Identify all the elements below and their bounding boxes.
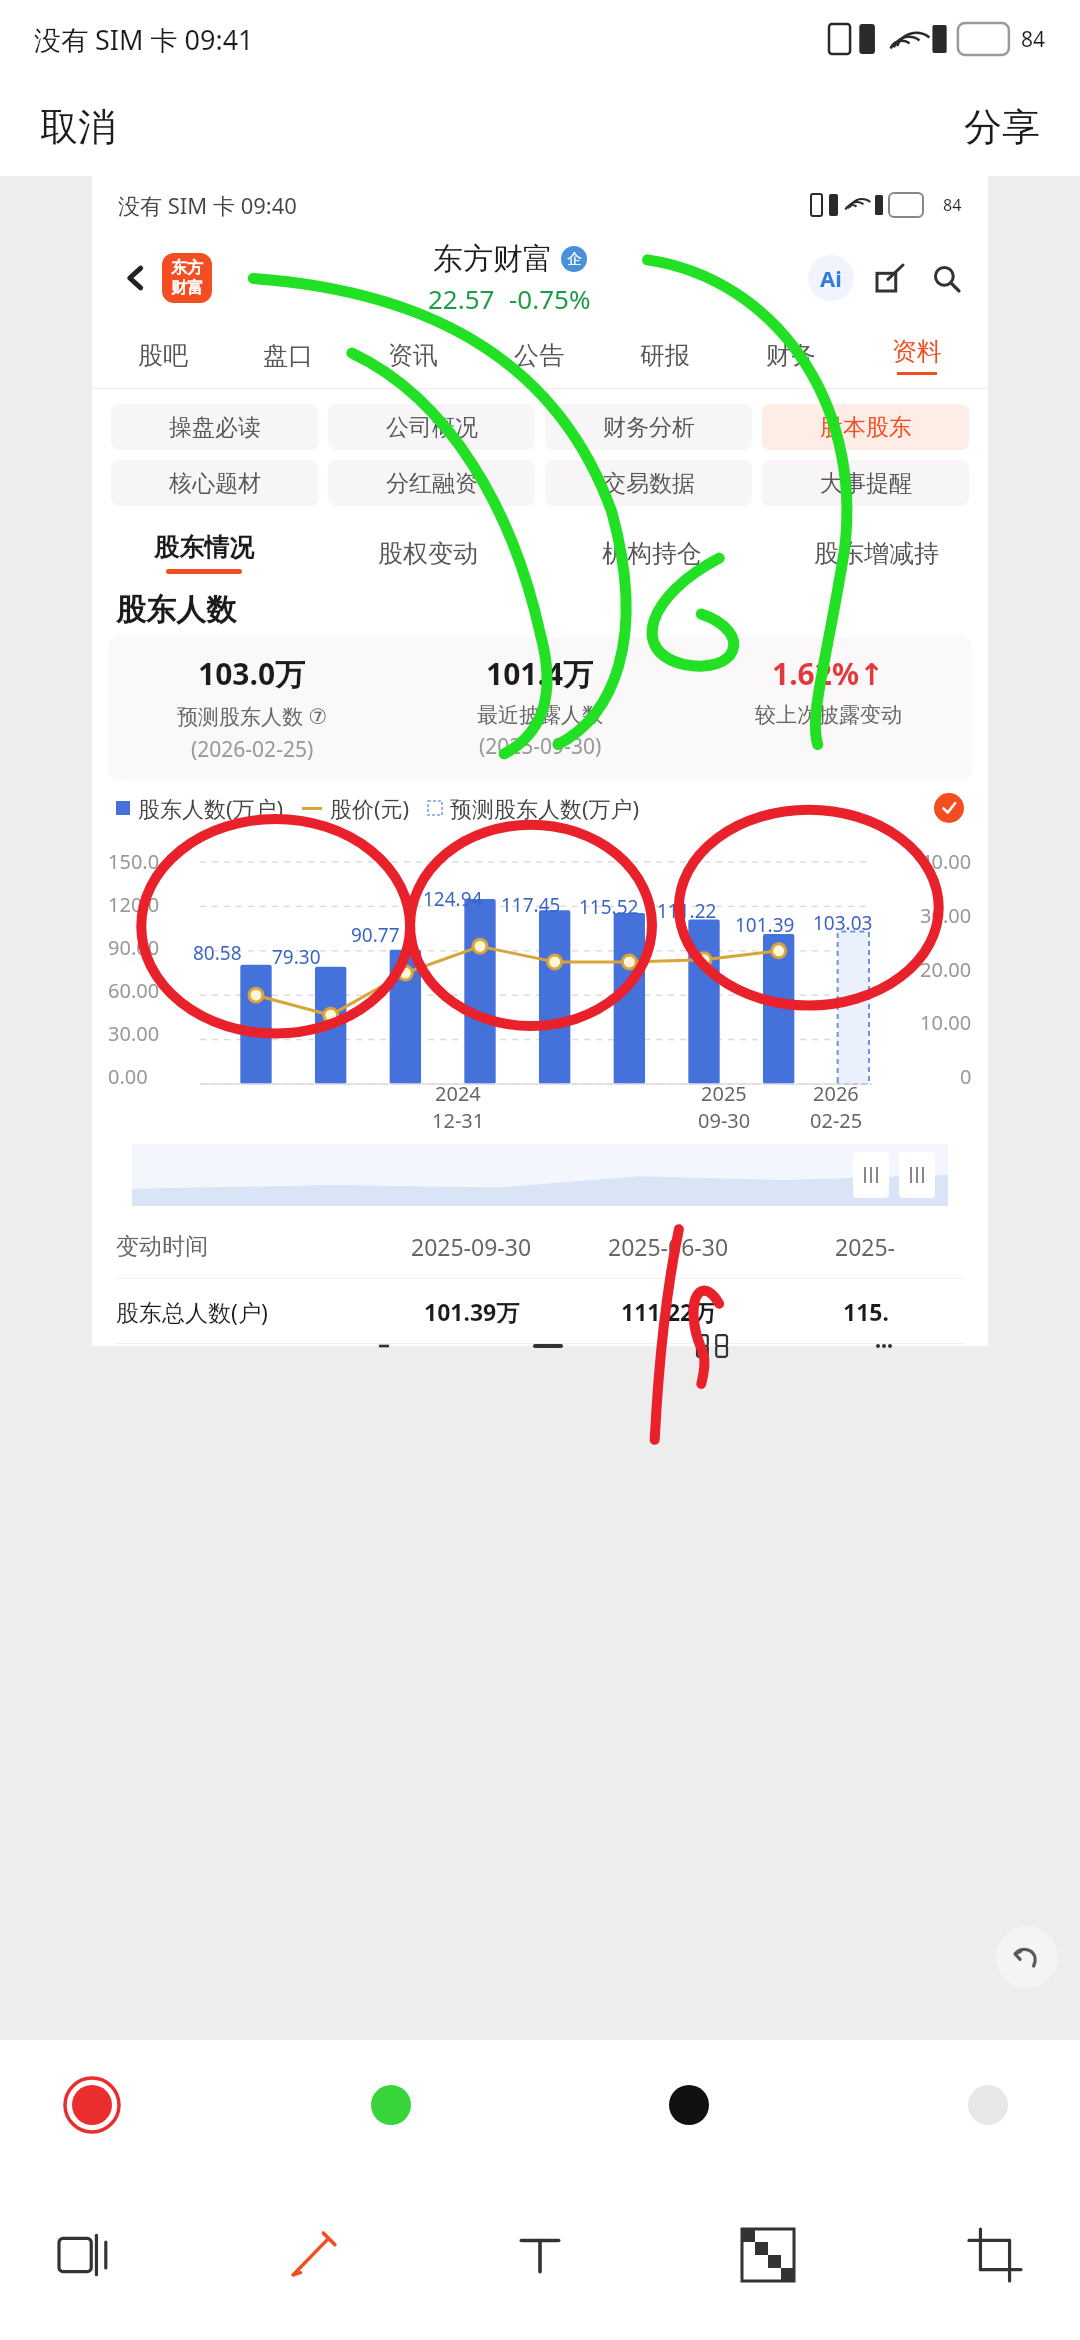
staticText: 分享 xyxy=(964,103,1040,151)
button[interactable]: Range handle xyxy=(899,1152,935,1198)
button[interactable]: 大事提醒 xyxy=(762,460,969,506)
button[interactable]: 公告 xyxy=(476,322,602,388)
button[interactable]: Mosaic xyxy=(723,2210,813,2300)
staticText: 股本股东 xyxy=(820,413,912,442)
staticText: 115. xyxy=(843,1296,889,1327)
button[interactable]: 盘口 xyxy=(225,322,350,388)
button[interactable]: 核心题材 xyxy=(111,460,318,506)
staticText: 60.00 xyxy=(108,977,160,1004)
staticText: 103.0万 xyxy=(198,653,306,694)
staticText: 111.22万 xyxy=(621,1296,717,1327)
button[interactable]: 取消 xyxy=(34,97,122,157)
staticText: 111.22 xyxy=(657,898,717,924)
button[interactable]: 股本股东 xyxy=(762,404,969,450)
staticText: 取消 xyxy=(40,103,116,151)
button[interactable]: Search xyxy=(926,258,966,298)
staticText: (2025-09-30) xyxy=(479,732,602,761)
staticText: 股东情况 xyxy=(154,532,254,563)
button[interactable]: Crop xyxy=(950,2210,1040,2300)
staticText: 30.00 xyxy=(108,1020,160,1047)
staticText: 2024 xyxy=(435,1080,481,1107)
staticText: (2026-02-25) xyxy=(191,735,314,764)
button[interactable]: 股东情况 xyxy=(92,521,316,585)
staticText: 财富 xyxy=(171,278,203,298)
button[interactable]: 操盘必读 xyxy=(111,404,318,450)
staticText: 02-25 xyxy=(810,1107,863,1134)
button[interactable]: 资讯 xyxy=(350,322,476,388)
staticText: 101.39 xyxy=(735,912,795,938)
staticText: 10.00 xyxy=(920,1009,972,1036)
staticText: 2025 xyxy=(701,1080,747,1107)
staticText: 20.00 xyxy=(920,956,972,983)
button[interactable]: 东方 xyxy=(162,253,212,303)
staticText: 没有 SIM 卡 09:41 xyxy=(34,21,254,58)
staticText: 交易数据 xyxy=(603,469,695,498)
staticText: 79.30 xyxy=(272,944,321,970)
button[interactable]: Text xyxy=(495,2210,585,2300)
staticText: 80.58 xyxy=(193,940,242,966)
staticText: 30.00 xyxy=(920,902,972,929)
button[interactable]: Undo xyxy=(996,1926,1058,1988)
staticText: Ai xyxy=(820,263,842,293)
staticText: 115. xyxy=(843,1344,889,1346)
button[interactable]: AI xyxy=(808,255,854,301)
button[interactable]: 股权变动 xyxy=(316,521,540,585)
button[interactable]: Range handle xyxy=(853,1152,889,1198)
staticText: 115.52 xyxy=(579,894,639,920)
staticText: 09-30 xyxy=(698,1107,751,1134)
staticText: 2025- xyxy=(835,1231,896,1262)
staticText: 2026 xyxy=(813,1080,859,1107)
button[interactable]: 机构持仓 xyxy=(540,521,764,585)
staticText: 120.0 xyxy=(108,891,160,918)
button[interactable] xyxy=(934,793,964,823)
staticText: 12-31 xyxy=(432,1107,485,1134)
staticText: 核心题材 xyxy=(169,469,261,498)
staticText: 预测股东人数(万户) xyxy=(450,793,640,823)
staticText: 资料 xyxy=(892,336,942,367)
button[interactable]: 分红融资 xyxy=(328,460,535,506)
button[interactable]: Colour xyxy=(657,2073,721,2137)
button[interactable]: 交易数据 xyxy=(545,460,752,506)
staticText: 90.77 xyxy=(351,922,400,948)
staticText: 101.39万 xyxy=(424,1296,520,1327)
staticText: 2025-09-30 xyxy=(411,1231,532,1262)
staticText: 资讯 xyxy=(388,340,438,371)
button[interactable]: Pen xyxy=(268,2210,358,2300)
staticText: 2025-06-30 xyxy=(608,1231,729,1262)
staticText: 股权变动 xyxy=(378,538,478,569)
button[interactable]: 财务 xyxy=(728,322,854,388)
staticText: 财务 xyxy=(766,340,816,371)
button[interactable]: 股吧 xyxy=(100,322,225,388)
button[interactable]: 资料 xyxy=(854,322,980,388)
staticText: 股东总人数(户) xyxy=(116,1296,268,1327)
staticText: 111.22万 xyxy=(621,1344,717,1346)
staticText: 1.62%↑ xyxy=(772,653,885,694)
staticText: 分红融资 xyxy=(386,469,478,498)
button[interactable]: 研报 xyxy=(602,322,728,388)
button[interactable]: Layers xyxy=(40,2210,130,2300)
staticText: 最近披露人数 xyxy=(477,702,603,728)
staticText: 变动时间 xyxy=(116,1232,208,1261)
staticText: 没有 SIM 卡 09:40 xyxy=(118,190,297,220)
button[interactable]: 公司概况 xyxy=(328,404,535,450)
staticText: 22.57 xyxy=(428,281,495,316)
button[interactable]: Share xyxy=(870,258,910,298)
staticText: 103.03 xyxy=(813,910,873,936)
staticText: 0.00 xyxy=(108,1063,148,1090)
button[interactable]: Colour xyxy=(956,2073,1020,2137)
staticText: 操盘必读 xyxy=(169,413,261,442)
button[interactable]: Colour xyxy=(359,2073,423,2137)
button[interactable]: Colour xyxy=(60,2073,124,2137)
button[interactable]: 股东增减持 xyxy=(764,521,988,585)
staticText: 股东增减持 xyxy=(814,538,939,569)
staticText: 公告 xyxy=(514,340,564,371)
staticText: 40.00 xyxy=(920,848,972,875)
staticText: 股东人数(万户) xyxy=(138,793,284,823)
button[interactable]: 分享 xyxy=(958,97,1046,157)
button[interactable]: Back xyxy=(114,256,158,300)
staticText: 企 xyxy=(567,250,582,269)
staticText: 150.0 xyxy=(108,848,160,875)
button[interactable]: 财务分析 xyxy=(545,404,752,450)
